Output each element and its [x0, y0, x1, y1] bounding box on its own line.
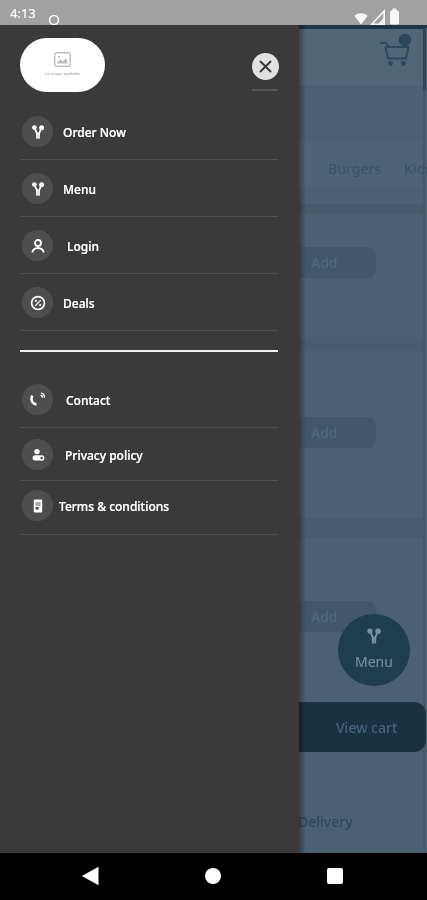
button[interactable]: Order Now [0, 103, 299, 160]
staticText: Burgers [328, 159, 382, 178]
button[interactable]: View cart [250, 702, 426, 752]
staticText: Delivery [298, 812, 353, 831]
button[interactable]: Deals [0, 274, 299, 331]
button[interactable] [317, 856, 353, 896]
button[interactable]: Burgers [320, 156, 390, 180]
staticText: Add [311, 607, 338, 626]
button[interactable]: Contact [0, 371, 299, 428]
button[interactable]: Privacy policy [0, 426, 299, 483]
button[interactable]: Add [272, 417, 376, 448]
button[interactable]: Add [272, 601, 376, 632]
button[interactable]: Menu [0, 160, 299, 217]
staticText: Terms & conditions [59, 498, 170, 514]
staticText: Menu [63, 181, 96, 197]
button[interactable] [252, 53, 279, 80]
staticText: Contact [66, 392, 111, 408]
staticText: Kids [404, 159, 427, 178]
button[interactable]: Terms & conditions [0, 477, 299, 534]
staticText: Order Now [63, 124, 126, 140]
staticText: Login [67, 238, 99, 254]
staticText: Privacy policy [65, 447, 143, 463]
staticText: no image available [45, 71, 81, 76]
staticText: Menu [355, 652, 393, 671]
button[interactable]: Add [272, 247, 376, 278]
button[interactable] [195, 856, 231, 896]
staticText: Deals [63, 295, 95, 311]
button[interactable]: Menu [338, 614, 410, 686]
staticText: View cart [336, 718, 398, 737]
button[interactable]: no image available [20, 38, 105, 92]
button[interactable]: Login [0, 217, 299, 274]
button[interactable] [72, 856, 108, 896]
button[interactable]: Kids [404, 156, 427, 180]
staticText: 4:13 [10, 4, 36, 22]
button[interactable] [376, 31, 416, 71]
staticText: Add [311, 423, 338, 442]
staticText: Add [311, 253, 338, 272]
